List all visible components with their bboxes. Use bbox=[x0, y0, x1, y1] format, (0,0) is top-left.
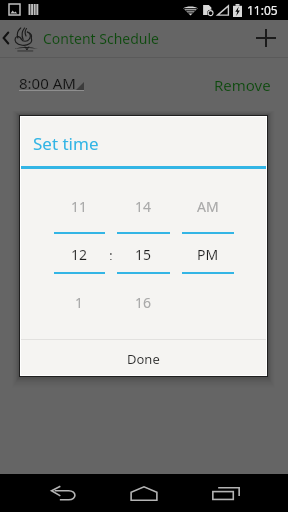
staticText: 15 bbox=[135, 245, 152, 261]
staticText: : bbox=[109, 246, 113, 260]
button[interactable]: Remove bbox=[207, 70, 278, 100]
button[interactable]: Add bbox=[244, 20, 288, 58]
button[interactable]: Back bbox=[0, 20, 14, 58]
staticText: 12 bbox=[71, 245, 88, 261]
staticText: Content Schedule bbox=[43, 29, 159, 48]
button[interactable]: Home bbox=[120, 474, 168, 512]
staticText: AM bbox=[197, 197, 219, 213]
staticText: 14 bbox=[135, 197, 152, 213]
staticText: 11 bbox=[71, 197, 88, 213]
staticText: 16 bbox=[135, 293, 152, 309]
button[interactable]: Recents bbox=[202, 474, 250, 512]
staticText: Remove bbox=[214, 75, 271, 95]
staticText: 8:00 AM bbox=[19, 73, 76, 93]
staticText: Done bbox=[127, 350, 160, 368]
button[interactable]: Back bbox=[40, 474, 88, 512]
button[interactable]: Done bbox=[21, 340, 266, 377]
staticText: Set time bbox=[33, 132, 99, 155]
staticText: 11:05 bbox=[247, 2, 278, 18]
button[interactable]: 8:00 AM bbox=[12, 64, 92, 96]
staticText: 1 bbox=[75, 293, 84, 309]
staticText: PM bbox=[197, 245, 219, 261]
